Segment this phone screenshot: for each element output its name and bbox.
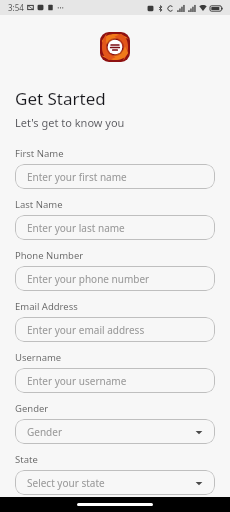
staticText: Get Started xyxy=(15,87,106,110)
button[interactable]: Enter your username xyxy=(15,368,215,393)
staticText: First Name xyxy=(15,147,64,160)
staticText: Enter your email address xyxy=(27,323,203,337)
staticText: Email Address xyxy=(15,300,78,313)
staticText: Enter your first name xyxy=(27,170,203,184)
staticText: Last Name xyxy=(15,198,63,211)
button[interactable]: Select your state xyxy=(15,470,215,495)
button[interactable]: Enter your first name xyxy=(15,164,215,189)
staticText: 3:54 xyxy=(8,2,24,13)
staticText: State xyxy=(15,453,38,466)
staticText: Phone Number xyxy=(15,249,84,262)
staticText: Select your state xyxy=(27,476,195,490)
staticText: Enter your last name xyxy=(27,221,203,235)
button[interactable]: Enter your last name xyxy=(15,215,215,240)
other: App logo xyxy=(100,32,130,62)
button[interactable]: Enter your phone number xyxy=(15,266,215,291)
button[interactable]: Gender xyxy=(15,419,215,444)
staticText: Gender xyxy=(27,425,195,439)
staticText: Enter your phone number xyxy=(27,272,203,286)
button[interactable]: Enter your email address xyxy=(15,317,215,342)
staticText: Let's get to know you xyxy=(15,115,125,130)
staticText: Enter your username xyxy=(27,374,203,388)
staticText: Username xyxy=(15,351,62,364)
staticText: Gender xyxy=(15,402,49,415)
